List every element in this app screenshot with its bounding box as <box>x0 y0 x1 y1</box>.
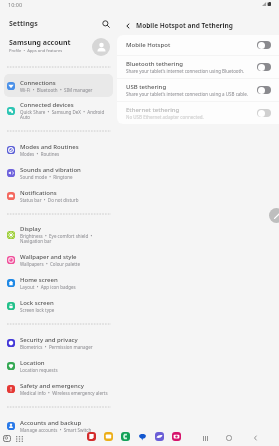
button[interactable]: Connections <box>4 74 113 97</box>
button[interactable]: Edit <box>269 208 279 223</box>
staticText: Sound mode • Ringtone <box>20 174 73 180</box>
button[interactable]: Wallpaper and style <box>4 248 113 271</box>
button[interactable]: Back <box>122 20 134 32</box>
staticText: Medical info • Wireless emergency alerts <box>20 390 108 396</box>
button[interactable]: Samsung account <box>0 32 117 60</box>
staticText: Share your tablet's internet connection … <box>126 91 249 97</box>
staticText: Lock screen <box>20 299 54 307</box>
staticText: Home screen <box>20 276 58 284</box>
button[interactable]: Modes and Routines <box>4 138 113 161</box>
button[interactable]: Toggle <box>257 63 271 71</box>
button[interactable]: Display <box>4 221 113 248</box>
button[interactable]: Sounds and vibration <box>4 161 113 184</box>
button[interactable]: Home <box>223 432 235 444</box>
staticText: Ethernet tethering <box>126 106 180 114</box>
staticText: Samsung account <box>9 38 71 48</box>
button[interactable]: Accounts and backup <box>4 414 113 437</box>
button[interactable]: Security and privacy <box>4 331 113 354</box>
button[interactable]: Notifications <box>4 184 113 207</box>
staticText: Connections <box>20 79 56 87</box>
button[interactable]: doc <box>87 432 96 441</box>
button[interactable]: Mobile Hotspot <box>117 35 279 55</box>
button[interactable]: USB tethering <box>117 79 279 101</box>
button[interactable]: Recent apps <box>199 432 211 444</box>
staticText: Mobile Hotspot <box>126 41 171 49</box>
staticText: Wallpaper and style <box>20 253 77 261</box>
button[interactable]: Back <box>249 432 261 444</box>
staticText: 10:00 <box>8 1 23 8</box>
staticText: Screen lock type <box>20 307 55 313</box>
button[interactable]: camera <box>172 432 181 441</box>
staticText: Connected devices <box>20 101 74 109</box>
staticText: Biometrics • Permission manager <box>20 344 93 350</box>
button[interactable]: Lock screen <box>4 294 113 317</box>
button[interactable]: Safety and emergency <box>4 377 113 400</box>
staticText: Location requests <box>20 367 58 373</box>
staticText: Share your tablet's internet connection … <box>126 68 245 74</box>
staticText: Accounts and backup <box>20 419 82 427</box>
staticText: USB tethering <box>126 83 167 91</box>
staticText: Profile • Apps and features <box>9 48 63 54</box>
staticText: Quick Share • Samsung DeX • Android Auto <box>20 109 111 121</box>
staticText: Notifications <box>20 189 57 197</box>
staticText: Settings <box>9 19 38 29</box>
button[interactable]: Ethernet tethering <box>117 102 279 124</box>
staticText: Brightness • Eye comfort shield • Naviga… <box>20 233 111 245</box>
staticText: Security and privacy <box>20 336 78 344</box>
button[interactable]: Toggle <box>257 41 271 49</box>
staticText: Sounds and vibration <box>20 166 81 174</box>
staticText: Safety and emergency <box>20 382 84 390</box>
staticText: Status bar • Do not disturb <box>20 197 79 203</box>
button[interactable]: folder <box>104 432 113 441</box>
staticText: Display <box>20 225 41 233</box>
button[interactable]: Recents <box>1 433 12 444</box>
staticText: Modes • Routines <box>20 151 60 157</box>
staticText: Wallpapers • Colour palette <box>20 261 80 267</box>
staticText: Mobile Hotspot and Tethering <box>136 21 233 30</box>
button[interactable]: Profile <box>92 38 110 56</box>
button[interactable]: chat <box>138 432 147 441</box>
button[interactable]: Search <box>99 17 113 31</box>
button[interactable]: Apps <box>14 433 25 444</box>
button[interactable]: phone <box>121 432 130 441</box>
button[interactable]: Location <box>4 354 113 377</box>
staticText: Manage accounts • Smart Switch <box>20 427 92 433</box>
button[interactable]: Home screen <box>4 271 113 294</box>
staticText: Modes and Routines <box>20 143 79 151</box>
staticText: Bluetooth tethering <box>126 60 183 68</box>
staticText: Wi-Fi • Bluetooth • SIM manager <box>20 87 93 93</box>
button[interactable]: internet <box>155 432 164 441</box>
button[interactable]: Toggle <box>257 86 271 94</box>
button[interactable]: Toggle <box>257 109 271 117</box>
button[interactable]: Connected devices <box>4 97 113 124</box>
staticText: Layout • App icon badges <box>20 284 76 290</box>
button[interactable]: Bluetooth tethering <box>117 56 279 78</box>
staticText: Location <box>20 359 45 367</box>
staticText: No USB Ethernet adapter connected. <box>126 114 204 120</box>
